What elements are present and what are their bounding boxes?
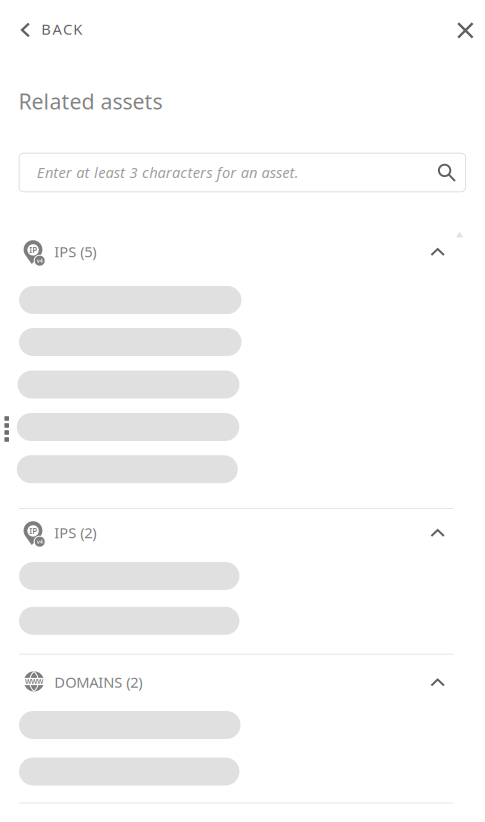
button[interactable]: Close: [442, 8, 485, 52]
staticText: IP: [29, 244, 37, 255]
staticText: WWW: [25, 677, 43, 686]
button[interactable]: Search: [430, 156, 464, 190]
staticText: Related assets: [18, 87, 162, 115]
staticText: IPS (2): [54, 523, 96, 542]
staticText: IP: [29, 525, 37, 536]
staticText: v4: [37, 538, 43, 545]
staticText: v4: [37, 257, 43, 264]
button[interactable]: IP: [19, 518, 446, 548]
staticText: Enter at least 3 characters for an asset…: [37, 163, 299, 182]
button[interactable]: WWW: [19, 667, 446, 697]
button[interactable]: IP: [19, 237, 446, 267]
staticText: IPS (5): [54, 242, 96, 261]
staticText: DOMAINS (2): [54, 672, 142, 692]
button[interactable]: BACK: [16, 8, 99, 52]
staticText: BACK: [41, 19, 82, 39]
